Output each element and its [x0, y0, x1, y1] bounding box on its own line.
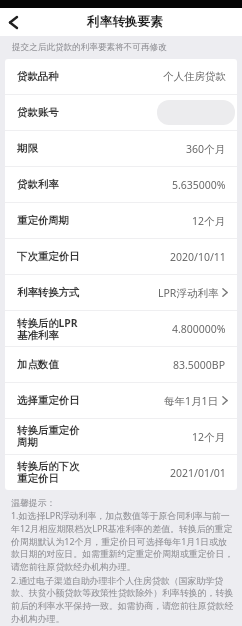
- button[interactable]: 加点数值: [5, 347, 237, 382]
- staticText: 重定价周期: [17, 214, 69, 227]
- staticText: 期限: [17, 142, 38, 155]
- staticText: 下次重定价日: [17, 250, 80, 263]
- staticText: 利率转换要素: [87, 14, 163, 30]
- button[interactable]: 贷款品种: [5, 59, 237, 94]
- staticText: 转换后的LPR 基准利率: [17, 316, 78, 342]
- staticText: 2021/01/01: [170, 466, 226, 480]
- button[interactable]: 期限: [5, 131, 237, 166]
- staticText: 每年1月1日: [164, 394, 219, 408]
- staticText: 12个月: [192, 430, 226, 444]
- staticText: 选择重定价日: [17, 394, 80, 407]
- button[interactable]: 转换后重定价 周期: [5, 419, 237, 454]
- button[interactable]: 下次重定价日: [5, 239, 237, 274]
- staticText: 贷款利率: [17, 178, 59, 191]
- staticText: 5.635000%: [172, 178, 226, 192]
- staticText: 2020/10/11: [170, 250, 226, 264]
- staticText: 温馨提示： 1.如选择LPR浮动利率，加点数值等于原合同利率与前一年12月相应期…: [11, 497, 234, 625]
- staticText: 提交之后此贷款的利率要素将不可再修改: [12, 42, 167, 53]
- staticText: 转换后重定价 周期: [17, 424, 80, 449]
- staticText: 个人住房贷款: [163, 70, 226, 83]
- staticText: 转换后的下次 重定价日: [17, 460, 80, 485]
- staticText: 加点数值: [17, 358, 59, 371]
- button[interactable]: 转换后的下次 重定价日: [5, 455, 237, 490]
- staticText: 83.5000BP: [173, 358, 226, 372]
- button[interactable]: Back: [0, 8, 26, 36]
- staticText: 贷款品种: [17, 70, 59, 83]
- button[interactable]: 选择重定价日: [5, 383, 237, 418]
- staticText: 贷款账号: [17, 106, 59, 119]
- staticText: LPR浮动利率: [158, 286, 219, 300]
- staticText: 利率转换方式: [17, 286, 80, 299]
- button[interactable]: 重定价周期: [5, 203, 237, 238]
- button[interactable]: 贷款利率: [5, 167, 237, 202]
- staticText: 4.800000%: [172, 322, 226, 336]
- button[interactable]: 贷款账号: [5, 95, 237, 130]
- button[interactable]: 利率转换方式: [5, 275, 237, 310]
- staticText: 360个月: [186, 142, 226, 156]
- button[interactable]: 转换后的LPR 基准利率: [5, 311, 237, 346]
- staticText: 12个月: [192, 214, 226, 228]
